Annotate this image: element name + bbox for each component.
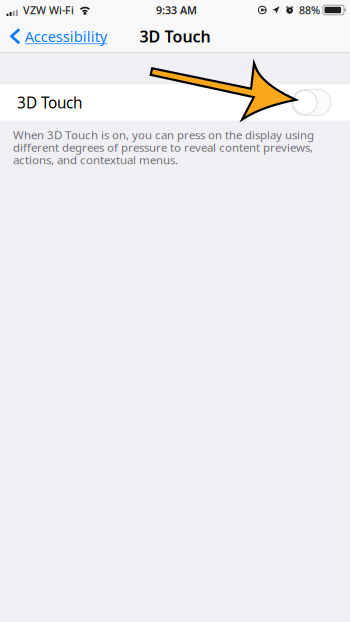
button[interactable]: Accessibility — [0, 22, 113, 50]
staticText: 3D Touch — [139, 26, 210, 47]
staticText: 9:33 AM — [156, 3, 197, 17]
staticText: 88% — [299, 3, 320, 17]
button[interactable]: 3D Touch — [292, 89, 331, 115]
staticText: VZW Wi-Fi — [23, 3, 74, 17]
staticText: Accessibility — [25, 26, 107, 46]
staticText: When 3D Touch is on, you can press on th… — [13, 128, 314, 166]
staticText: 3D Touch — [17, 92, 82, 113]
